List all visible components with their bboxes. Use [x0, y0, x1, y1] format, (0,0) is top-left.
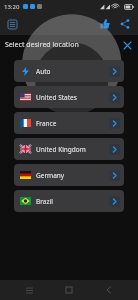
- button[interactable]: Menu: [5, 17, 19, 31]
- staticText: Germany: [36, 171, 65, 180]
- button[interactable]: United States: [14, 86, 124, 108]
- staticText: Brazil: [36, 197, 53, 206]
- button[interactable]: Brazil: [14, 190, 124, 212]
- button[interactable]: Share: [117, 16, 133, 32]
- button[interactable]: United Kingdom: [14, 138, 124, 160]
- staticText: Auto: [36, 67, 51, 76]
- button[interactable]: Close: [120, 38, 134, 52]
- button[interactable]: France: [14, 112, 124, 134]
- staticText: United States: [36, 93, 77, 102]
- staticText: United Kingdom: [36, 145, 86, 154]
- button[interactable]: Recents: [18, 280, 40, 300]
- button[interactable]: Back: [98, 280, 120, 300]
- button[interactable]: Like: [97, 16, 113, 32]
- staticText: France: [36, 119, 57, 128]
- staticText: Select desired location: [5, 40, 79, 50]
- button[interactable]: Home: [58, 280, 80, 300]
- button[interactable]: Auto: [14, 60, 124, 82]
- button[interactable]: Germany: [14, 164, 124, 186]
- staticText: 13:20: [4, 3, 20, 11]
